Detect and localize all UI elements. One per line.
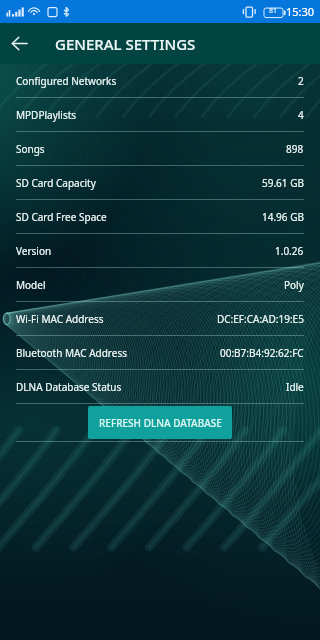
staticText: Version <box>16 244 52 258</box>
staticText: Songs <box>16 142 45 156</box>
staticText: Bluetooth MAC Address <box>16 346 128 360</box>
staticText: 15:30 <box>286 4 315 19</box>
button[interactable]: SD Card Free Space <box>0 200 320 234</box>
staticText: REFRESH DLNA DATABASE <box>99 416 222 430</box>
staticText: Poly <box>284 278 304 292</box>
button[interactable]: Bluetooth MAC Address <box>0 336 320 370</box>
staticText: 1.0.26 <box>275 244 304 258</box>
staticText: SD Card Free Space <box>16 210 107 224</box>
button[interactable]: Configured Networks <box>0 64 320 98</box>
staticText: SD Card Capacity <box>16 176 96 190</box>
button[interactable]: MPDPlaylists <box>0 98 320 132</box>
button[interactable]: Songs <box>0 132 320 166</box>
staticText: 898 <box>286 142 304 156</box>
staticText: Wi-Fi MAC Address <box>16 312 104 326</box>
staticText: DLNA Database Status <box>16 380 122 394</box>
staticText: 81 <box>269 6 278 16</box>
button[interactable]: Back <box>0 23 38 64</box>
staticText: 4 <box>298 108 304 122</box>
staticText: Idle <box>286 380 304 394</box>
staticText: 59.61 GB <box>262 176 304 190</box>
button[interactable]: DLNA Database Status <box>0 370 320 404</box>
staticText: Configured Networks <box>16 74 117 88</box>
button[interactable]: SD Card Capacity <box>0 166 320 200</box>
staticText: 2 <box>298 74 304 88</box>
button[interactable]: Version <box>0 234 320 268</box>
staticText: MPDPlaylists <box>16 108 77 122</box>
button[interactable]: Model <box>0 268 320 302</box>
staticText: 00:B7:B4:92:62:FC <box>220 346 304 360</box>
button[interactable]: Wi-Fi MAC Address <box>0 302 320 336</box>
staticText: GENERAL SETTINGS <box>55 34 196 54</box>
button[interactable]: REFRESH DLNA DATABASE <box>0 404 320 441</box>
staticText: 14.96 GB <box>262 210 304 224</box>
staticText: DC:EF:CA:AD:19:E5 <box>217 312 304 326</box>
staticText: Model <box>16 278 46 292</box>
